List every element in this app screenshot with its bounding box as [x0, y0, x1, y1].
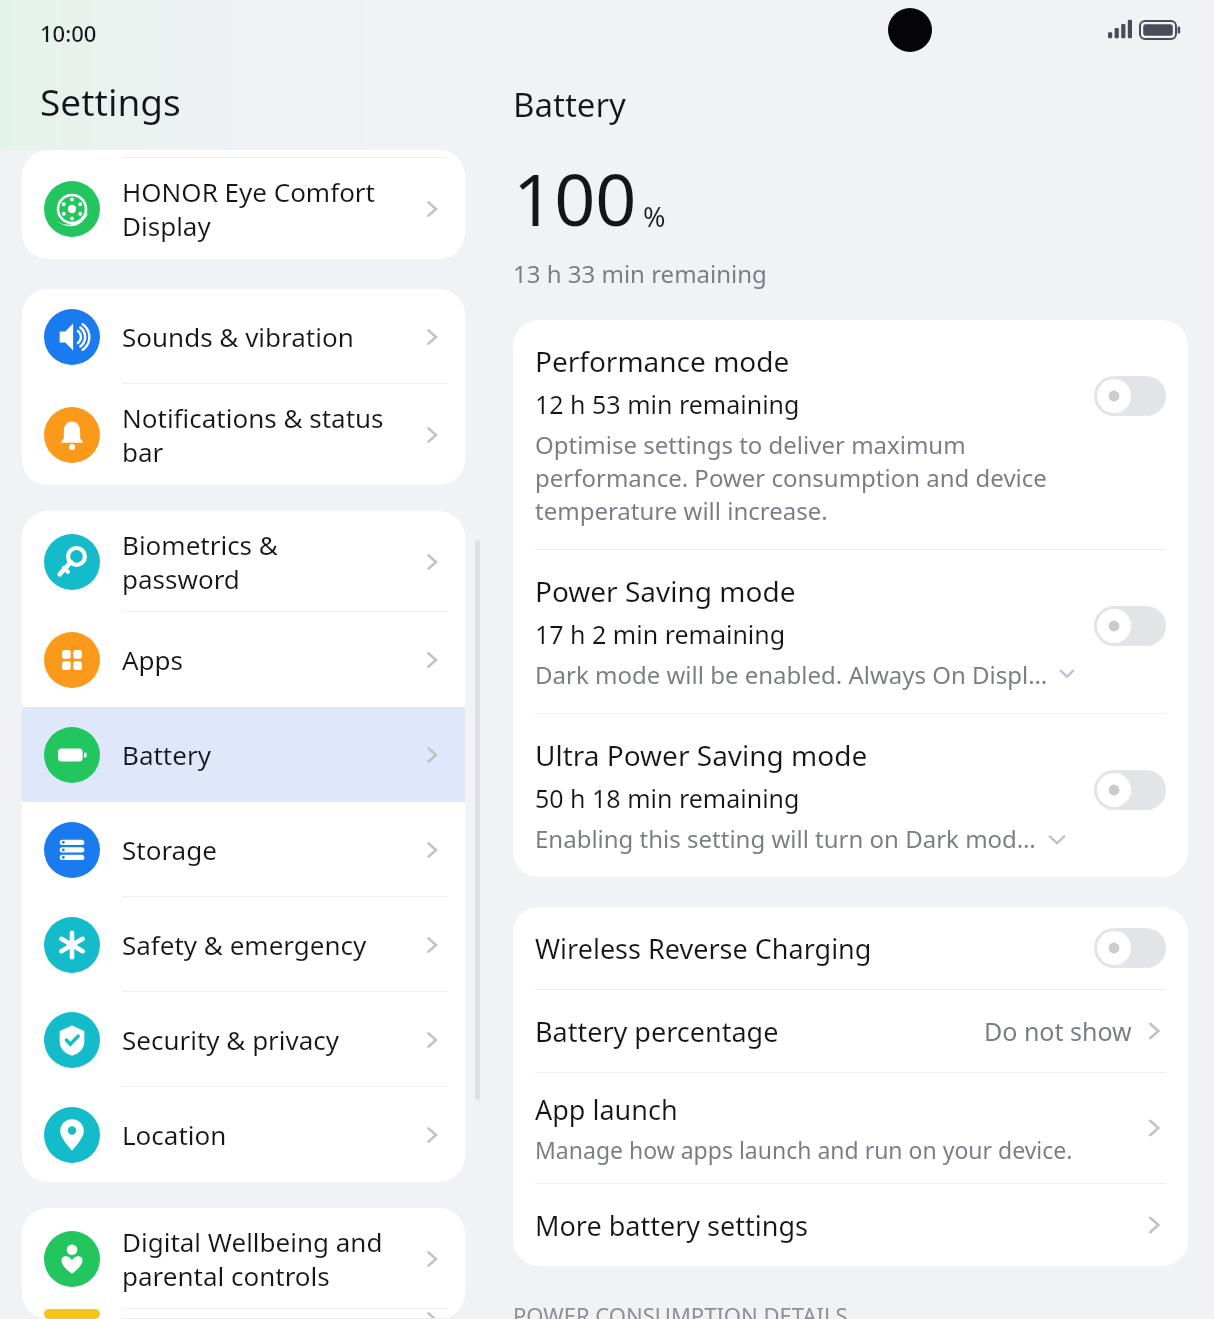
staticText: Notifications & status bar	[122, 400, 421, 470]
button[interactable]: Wireless Reverse Charging	[513, 907, 1188, 989]
staticText: Ultra Power Saving mode	[535, 736, 868, 774]
button[interactable]: Biometrics & password	[22, 511, 465, 612]
button[interactable]: Storage	[22, 802, 465, 897]
staticText: 13 h 33 min remaining	[513, 257, 767, 290]
button[interactable]: Location	[22, 1087, 465, 1182]
staticText: Battery percentage	[535, 1013, 984, 1050]
button[interactable]: App launch	[513, 1073, 1188, 1183]
staticText: App launch	[535, 1091, 678, 1128]
staticText: 50 h 18 min remaining	[535, 781, 800, 815]
button[interactable]	[22, 1309, 465, 1319]
button[interactable]: Toggle off	[1094, 606, 1166, 646]
button[interactable]: Sounds & vibration	[22, 289, 465, 384]
button[interactable]: More battery settings	[513, 1184, 1188, 1266]
staticText: 17 h 2 min remaining	[535, 617, 786, 651]
button[interactable]: Ultra Power Saving mode	[513, 714, 1188, 877]
button[interactable]: Battery percentage	[513, 990, 1188, 1072]
staticText: Performance mode	[535, 342, 790, 380]
staticText: Settings	[40, 76, 181, 126]
button[interactable]: Toggle off	[1094, 376, 1166, 416]
button[interactable]: Performance mode	[513, 320, 1188, 549]
staticText: %	[643, 198, 666, 235]
staticText: Battery	[122, 737, 421, 772]
staticText: Sounds & vibration	[122, 319, 421, 354]
button[interactable]: Toggle off	[1094, 770, 1166, 810]
staticText: Security & privacy	[122, 1022, 421, 1057]
staticText: 100	[513, 149, 637, 247]
staticText: Biometrics & password	[122, 527, 421, 597]
button[interactable]: Apps	[22, 612, 465, 707]
button[interactable]: Power Saving mode	[513, 550, 1188, 713]
staticText: Storage	[122, 832, 421, 867]
staticText: Manage how apps launch and run on your d…	[535, 1134, 1073, 1165]
staticText: HONOR Eye Comfort Display	[122, 174, 421, 244]
staticText	[122, 1309, 421, 1319]
staticText: Do not show	[984, 1014, 1132, 1048]
staticText: Enabling this setting will turn on Dark …	[535, 822, 1036, 855]
staticText: Safety & emergency	[122, 927, 421, 962]
button[interactable]: Digital Wellbeing and parental controls	[22, 1208, 465, 1309]
staticText: Dark mode will be enabled. Always On Dis…	[535, 658, 1048, 691]
button[interactable]: Toggle off	[1094, 928, 1166, 968]
button[interactable]: Battery	[22, 707, 465, 802]
button[interactable]: Security & privacy	[22, 992, 465, 1087]
staticText: Power Saving mode	[535, 572, 796, 610]
staticText: Optimise settings to deliver maximum per…	[535, 428, 1047, 527]
staticText: Digital Wellbeing and parental controls	[122, 1224, 421, 1294]
button[interactable]: Safety & emergency	[22, 897, 465, 992]
staticText: Location	[122, 1117, 421, 1152]
button[interactable]: Notifications & status bar	[22, 384, 465, 485]
staticText: 10:00	[40, 18, 97, 48]
button[interactable]: HONOR Eye Comfort Display	[22, 158, 465, 259]
staticText: 12 h 53 min remaining	[535, 387, 800, 421]
staticText: Apps	[122, 642, 421, 677]
staticText: More battery settings	[535, 1207, 1142, 1244]
staticText: Battery	[513, 82, 626, 127]
staticText: Wireless Reverse Charging	[535, 930, 1094, 967]
staticText: POWER CONSUMPTION DETAILS	[513, 1300, 848, 1319]
